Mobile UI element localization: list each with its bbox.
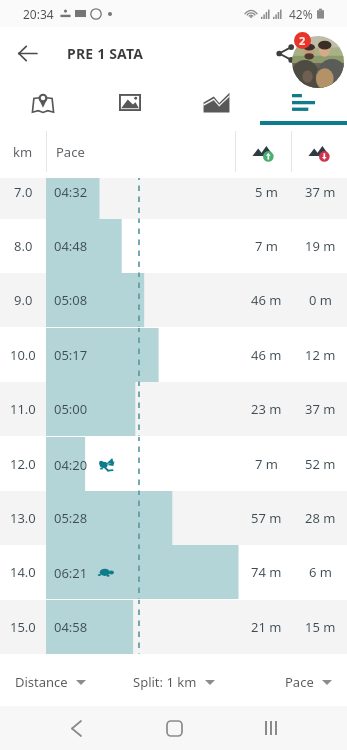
staticText: 04:20: [54, 456, 88, 474]
button[interactable]: Graphs: [173, 80, 260, 125]
staticText: 23 m: [251, 400, 282, 418]
button[interactable]: 11.0: [0, 382, 347, 436]
button[interactable]: 15.0: [0, 600, 347, 654]
staticText: 12 m: [305, 346, 336, 364]
staticText: 9.0: [14, 291, 33, 309]
staticText: 11.0: [10, 400, 36, 418]
staticText: 14.0: [10, 563, 36, 581]
staticText: 04:58: [54, 618, 88, 636]
button[interactable]: Recents: [249, 706, 293, 750]
staticText: 7.0: [14, 183, 33, 201]
staticText: 5 m: [255, 183, 278, 201]
staticText: 20:34: [23, 6, 54, 22]
staticText: 57 m: [251, 509, 282, 527]
staticText: 6 m: [309, 563, 332, 581]
button[interactable]: 7.0: [0, 178, 347, 219]
button[interactable]: 14.0: [0, 545, 347, 599]
staticText: 74 m: [251, 563, 282, 581]
staticText: 15 m: [305, 618, 336, 636]
staticText: 15.0: [10, 618, 36, 636]
button[interactable]: Pace: [235, 658, 347, 706]
button[interactable]: Share: [268, 36, 303, 71]
button[interactable]: Photos: [86, 80, 173, 125]
staticText: 52 m: [305, 455, 336, 473]
staticText: 04:48: [54, 237, 88, 255]
button[interactable]: Split: 1 km: [112, 658, 235, 706]
staticText: Split: 1 km: [133, 673, 197, 691]
staticText: 05:08: [54, 291, 88, 309]
button[interactable]: Home: [152, 706, 196, 750]
staticText: 37 m: [305, 400, 336, 418]
button[interactable]: Map: [0, 80, 86, 125]
staticText: 06:21: [54, 564, 88, 582]
staticText: 13.0: [10, 509, 36, 527]
staticText: 05:28: [54, 509, 88, 527]
button[interactable]: Distance: [0, 658, 112, 706]
staticText: 05:00: [54, 400, 88, 418]
staticText: 37 m: [305, 183, 336, 201]
staticText: Distance: [15, 673, 68, 691]
button[interactable]: Back: [0, 27, 55, 80]
staticText: 8.0: [14, 237, 33, 255]
staticText: 7 m: [255, 237, 278, 255]
staticText: 12.0: [10, 455, 36, 473]
staticText: 0 m: [309, 291, 332, 309]
staticText: Pace: [285, 673, 314, 691]
staticText: 19 m: [305, 237, 336, 255]
staticText: 42%: [289, 6, 313, 22]
staticText: PRE 1 SATA: [67, 44, 144, 63]
button[interactable]: Back: [54, 706, 98, 750]
button[interactable]: 9.0: [0, 273, 347, 327]
staticText: Pace: [56, 143, 85, 161]
button[interactable]: 10.0: [0, 328, 347, 382]
staticText: 7 m: [255, 455, 278, 473]
staticText: 46 m: [251, 346, 282, 364]
staticText: 04:32: [54, 183, 88, 201]
button[interactable]: 13.0: [0, 491, 347, 545]
staticText: 28 m: [305, 509, 336, 527]
staticText: 10.0: [10, 346, 36, 364]
staticText: km: [13, 143, 33, 161]
staticText: 2: [299, 33, 306, 48]
button[interactable]: Splits: [260, 80, 347, 125]
staticText: 05:17: [54, 346, 88, 364]
button[interactable]: 12.0: [0, 437, 347, 491]
button[interactable]: Profile: [292, 36, 344, 88]
button[interactable]: 8.0: [0, 219, 347, 273]
staticText: 46 m: [251, 291, 282, 309]
staticText: 21 m: [251, 618, 282, 636]
